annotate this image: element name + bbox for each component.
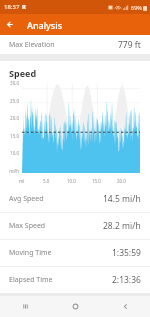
staticText: 10.0 [0, 150, 19, 156]
staticText: R [22, 3, 26, 11]
staticText: 14.5 mi/h [103, 193, 141, 205]
staticText: Avg Speed [9, 194, 44, 204]
button[interactable]: Recent apps [0, 296, 50, 317]
button[interactable]: Moving Time [0, 240, 150, 266]
button[interactable]: Home [50, 296, 100, 317]
staticText: Elapsed Time [9, 275, 53, 285]
staticText: 28.2 mi/h [103, 220, 141, 232]
button[interactable]: Max Elevation [0, 35, 150, 54]
staticText: 15.0 [92, 178, 101, 184]
staticText: 69% [131, 4, 142, 11]
staticText: 20.0 [117, 178, 126, 184]
staticText: 30.0 [0, 80, 19, 86]
button[interactable]: Avg Speed [0, 186, 150, 212]
staticText: 5.0 [43, 178, 50, 184]
staticText: 20.0 [0, 115, 19, 121]
staticText: Analysis [27, 19, 63, 31]
staticText: Speed [9, 67, 37, 79]
staticText: Max Elevation [9, 40, 55, 50]
staticText: Max Speed [9, 221, 46, 231]
staticText: mi [19, 178, 25, 184]
staticText: 25.0 [0, 98, 19, 104]
staticText: Moving Time [9, 248, 52, 258]
staticText: 2:13:36 [112, 274, 141, 286]
button[interactable]: Back [100, 296, 150, 317]
staticText: 779 ft [118, 39, 141, 51]
button[interactable]: Elapsed Time [0, 267, 150, 293]
staticText: 1:35:59 [112, 247, 141, 259]
button[interactable]: Max Speed [0, 213, 150, 239]
staticText: mi/h [0, 168, 19, 174]
staticText: 15.0 [0, 133, 19, 139]
staticText: 10.0 [67, 178, 76, 184]
button[interactable]: Back [0, 15, 19, 34]
staticText: 18:57 [4, 3, 20, 11]
